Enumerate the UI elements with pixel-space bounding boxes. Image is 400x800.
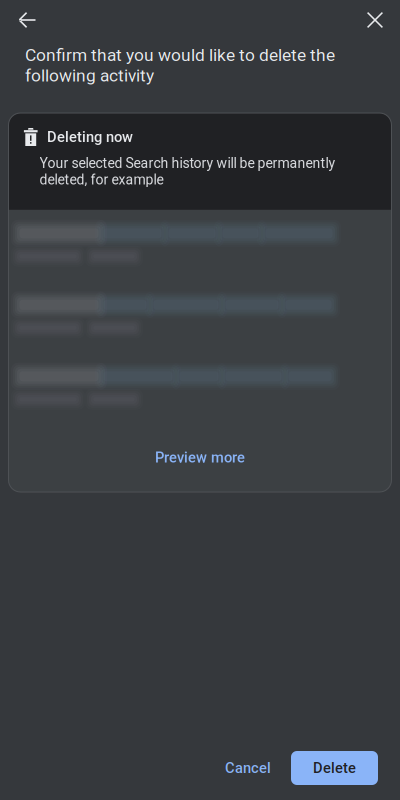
button[interactable]: Delete <box>291 751 378 785</box>
staticText: Confirm that you would like to delete th… <box>25 45 335 86</box>
staticText: Your selected Search history will be per… <box>39 155 335 188</box>
staticText: Delete <box>313 759 356 777</box>
button[interactable]: Cancel <box>211 750 285 786</box>
button[interactable]: Preview more <box>143 442 257 473</box>
button[interactable]: Back <box>5 0 49 42</box>
button[interactable]: Close <box>353 0 397 42</box>
staticText: Preview more <box>155 449 245 466</box>
staticText: Deleting now <box>47 128 133 146</box>
staticText: Cancel <box>225 759 271 777</box>
